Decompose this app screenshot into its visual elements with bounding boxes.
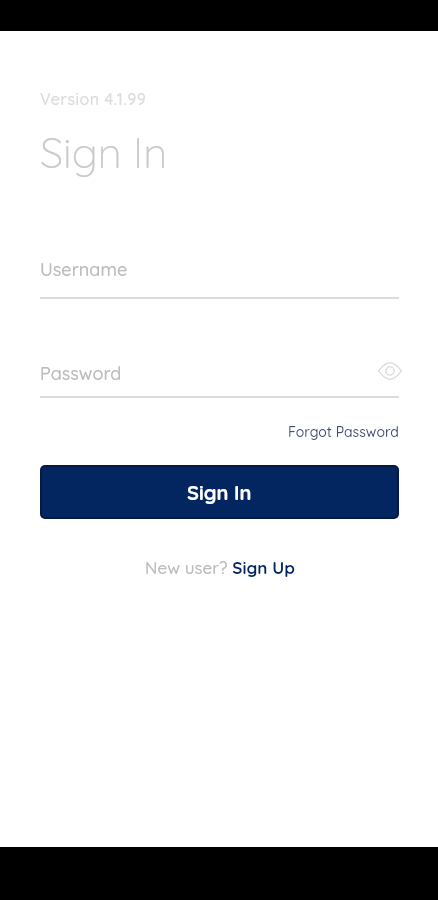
staticText: Version 4.1.99 bbox=[40, 89, 147, 109]
staticText: Sign In bbox=[187, 480, 252, 505]
staticText: Password bbox=[40, 362, 122, 385]
button[interactable]: Sign In bbox=[42, 467, 397, 517]
button[interactable]: Username bbox=[40, 258, 399, 299]
button[interactable]: Forgot Password bbox=[288, 423, 399, 441]
button[interactable]: New user? Sign Up bbox=[145, 557, 295, 578]
staticText: Sign In bbox=[40, 126, 168, 179]
staticText: New user? Sign Up bbox=[145, 557, 295, 578]
button[interactable]: Password bbox=[40, 362, 399, 398]
button[interactable]: Show password bbox=[375, 359, 405, 383]
staticText: Username bbox=[40, 258, 128, 281]
staticText: Forgot Password bbox=[288, 423, 399, 441]
